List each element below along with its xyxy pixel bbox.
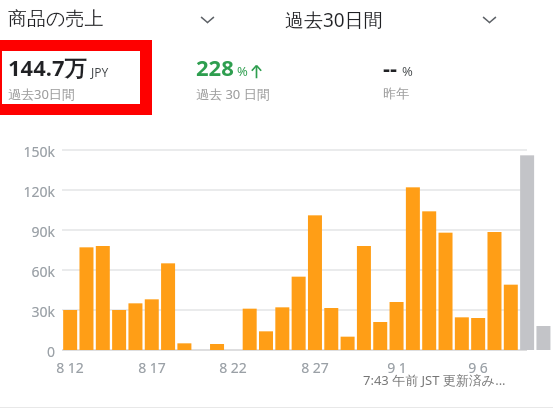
staticText: -- [383,52,398,82]
staticText: 144.7万 [8,52,87,82]
button[interactable]: 228 [196,52,270,103]
staticText: 昨年 [383,85,409,101]
staticText: 30k [0,302,55,321]
button[interactable]: 144.7万 [8,52,109,103]
staticText: 150k [0,142,55,161]
staticText: 8 17 [122,358,182,377]
staticText: 8 22 [203,358,263,377]
staticText: 9 6 [448,358,508,377]
staticText: 9 1 [367,358,427,377]
staticText: JPY [91,64,109,80]
button[interactable]: Change date range [477,7,502,32]
staticText: 7:43 午前 JST 更新済み... [363,371,506,389]
button[interactable]: -- [383,52,413,101]
button[interactable]: Expand product sales [195,7,220,32]
button[interactable]: 商品の売上 [8,7,104,31]
staticText: 90k [0,222,55,241]
staticText: % [237,62,248,80]
staticText: % [402,62,413,80]
staticText: 120k [0,182,55,201]
staticText: 0 [0,342,55,361]
staticText: 8 12 [40,358,100,377]
button[interactable]: 過去30日間 [285,7,383,33]
staticText: 228 [196,52,234,82]
staticText: 60k [0,262,55,281]
staticText: 過去30日間 [8,85,75,103]
staticText: 過去 30 日間 [196,85,270,103]
staticText: 8 27 [285,358,345,377]
